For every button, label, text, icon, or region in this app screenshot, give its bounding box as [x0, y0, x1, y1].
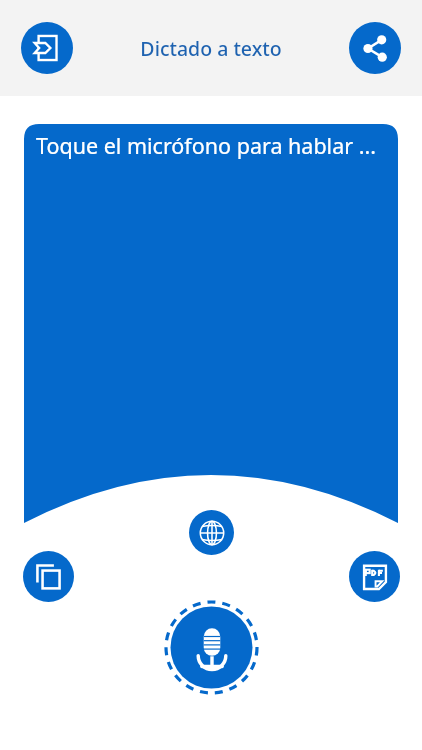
staticText: Toque el micrófono para hablar ... — [36, 131, 376, 160]
button[interactable]: Text field — [21, 22, 73, 74]
staticText: Dictado a texto — [140, 35, 282, 62]
button[interactable]: Export PDF — [349, 551, 400, 602]
button[interactable]: Share — [349, 22, 401, 74]
button[interactable]: Copy — [23, 551, 74, 602]
button[interactable]: Microphone — [163, 599, 260, 696]
button[interactable]: Language — [189, 510, 234, 555]
